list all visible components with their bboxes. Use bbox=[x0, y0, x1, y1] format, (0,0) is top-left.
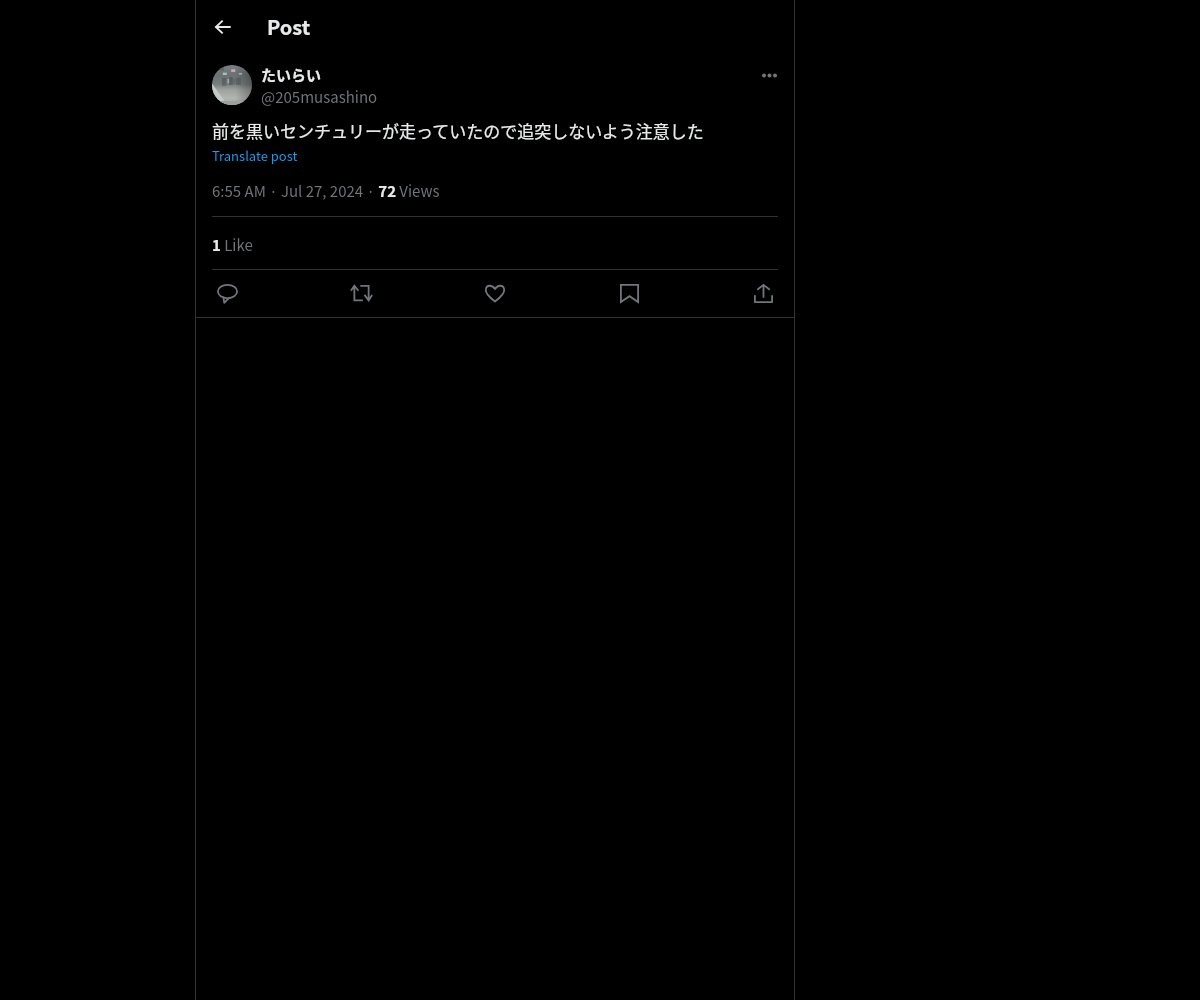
button[interactable]: Profile photo bbox=[212, 65, 252, 105]
staticText: 1 Like bbox=[212, 234, 253, 256]
button[interactable]: Bookmark bbox=[611, 275, 647, 311]
staticText: @205musashino bbox=[261, 86, 378, 108]
button[interactable]: Share bbox=[745, 275, 781, 311]
staticText: 6:55 AM · Jul 27, 2024 · 72 Views bbox=[212, 180, 440, 202]
button[interactable]: More options bbox=[754, 60, 784, 90]
button[interactable]: たいらい bbox=[261, 64, 378, 108]
staticText: 前を黒いセンチュリーが走っていたので追突しないよう注意した bbox=[212, 118, 704, 143]
button[interactable]: 1 Like bbox=[195, 219, 795, 271]
button[interactable]: Translate post bbox=[212, 146, 298, 165]
button[interactable]: Back bbox=[203, 7, 243, 47]
button[interactable]: Like bbox=[477, 275, 513, 311]
staticText: Translate post bbox=[212, 146, 298, 165]
staticText: たいらい bbox=[261, 64, 322, 86]
button[interactable]: Reply bbox=[209, 275, 245, 311]
staticText: Post bbox=[267, 12, 311, 41]
button[interactable]: Repost bbox=[343, 275, 379, 311]
